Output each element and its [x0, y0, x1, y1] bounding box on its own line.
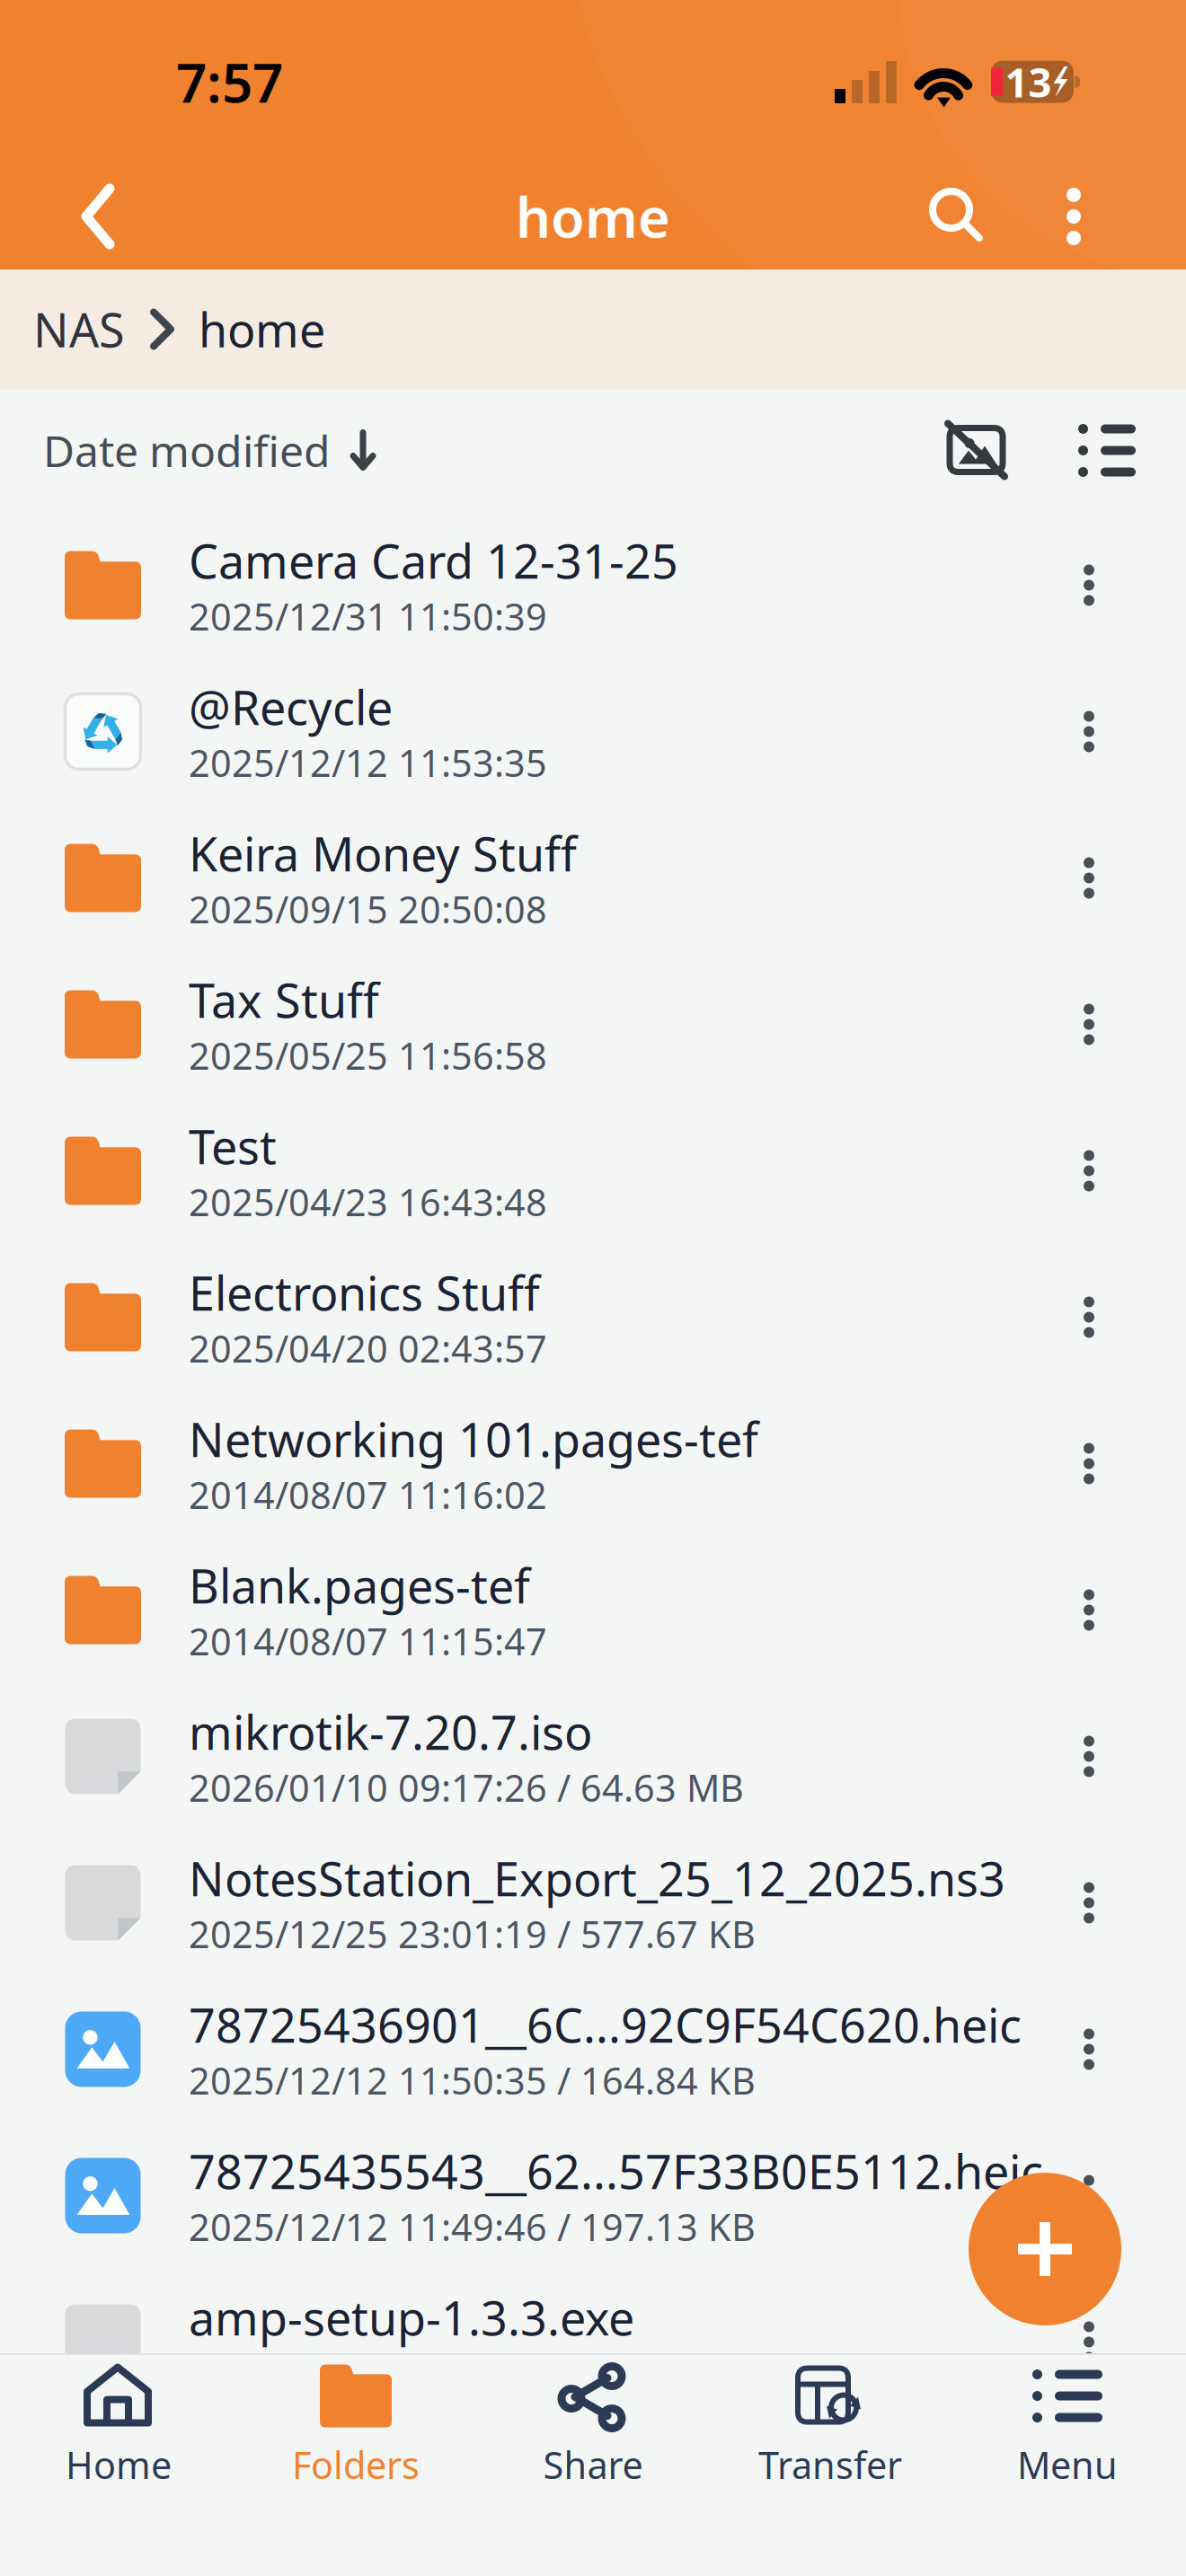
button[interactable]: Add — [969, 2173, 1121, 2325]
staticText: 7:57 — [176, 46, 283, 118]
button[interactable]: Electronics Stuff — [0, 1244, 1186, 1390]
staticText: home — [516, 180, 670, 253]
staticText: Networking 101.pages-tef — [189, 1408, 758, 1470]
staticText: 2025/12/12 11:53:35 — [189, 738, 547, 787]
staticText: Keira Money Stuff — [189, 822, 577, 884]
button[interactable]: Networking 101.pages-tef — [0, 1390, 1186, 1537]
staticText: 2025/12/25 23:01:19 / 577.67 KB — [189, 1909, 756, 1958]
button[interactable]: home — [199, 298, 325, 360]
staticText: 2025/04/20 02:43:57 — [189, 1324, 547, 1373]
staticText: home — [199, 298, 325, 360]
staticText: NAS — [33, 298, 125, 360]
button[interactable]: @Recycle — [0, 658, 1186, 805]
staticText: 2025/09/15 20:50:08 — [189, 884, 547, 934]
staticText: Date modified — [43, 422, 331, 479]
staticText: Camera Card 12-31-25 — [189, 529, 678, 592]
staticText: Blank.pages-tef — [189, 1554, 530, 1616]
button[interactable]: amp-setup-1.3.3.exe — [0, 2269, 1186, 2415]
staticText: 2026/01/10 09:17:26 / 64.63 MB — [189, 1763, 744, 1812]
button[interactable]: Date modified — [43, 422, 376, 479]
button[interactable]: Folders — [237, 2355, 474, 2497]
staticText: Folders — [292, 2440, 420, 2489]
staticText: 2025/12/31 11:50:39 — [189, 592, 547, 641]
staticText: 2025/12/12 11:49:46 / 197.13 KB — [189, 2202, 756, 2251]
button[interactable]: NotesStation_Export_25_12_2025.ns3 — [0, 1830, 1186, 1976]
button[interactable]: Tax Stuff — [0, 951, 1186, 1098]
staticText: Electronics Stuff — [189, 1262, 540, 1324]
button[interactable]: NAS — [33, 298, 125, 360]
staticText: 78725436901__6C...92C9F54C620.heic — [189, 1994, 1022, 2056]
staticText: 2014/08/07 11:15:47 — [189, 1616, 547, 1666]
staticText: 2025/04/23 16:43:48 — [189, 1177, 547, 1226]
staticText: 2025/12/12 11:50:35 / 164.84 KB — [189, 2056, 756, 2105]
staticText: 2014/08/07 11:16:02 — [189, 1470, 547, 1519]
button[interactable]: List view — [1069, 415, 1145, 485]
staticText: Test — [189, 1115, 277, 1177]
button[interactable]: Transfer — [712, 2355, 949, 2497]
staticText: mikrotik-7.20.7.iso — [189, 1701, 592, 1763]
staticText: Tax Stuff — [189, 969, 379, 1031]
button[interactable]: Back — [56, 160, 140, 273]
staticText: 2025/05/25 11:56:58 — [189, 1031, 547, 1080]
button[interactable]: Blank.pages-tef — [0, 1537, 1186, 1683]
staticText: @Recycle — [189, 676, 393, 738]
staticText: amp-setup-1.3.3.exe — [189, 2286, 634, 2348]
staticText: 2025/05/24 15:41:20 / 108.75 MB — [189, 2348, 766, 2398]
button[interactable]: More options — [1035, 160, 1112, 273]
staticText: Transfer — [758, 2440, 902, 2489]
staticText: NotesStation_Export_25_12_2025.ns3 — [189, 1847, 1005, 1909]
staticText: Menu — [1017, 2440, 1118, 2489]
button[interactable]: 78725435543__62...57F33B0E5112.heic — [0, 2122, 1186, 2269]
staticText: Share — [543, 2440, 643, 2489]
staticText: 78725435543__62...57F33B0E5112.heic — [189, 2140, 1043, 2202]
staticText: 13 — [1005, 55, 1052, 109]
button[interactable]: mikrotik-7.20.7.iso — [0, 1683, 1186, 1830]
button[interactable]: Keira Money Stuff — [0, 805, 1186, 951]
button[interactable]: 78725436901__6C...92C9F54C620.heic — [0, 1976, 1186, 2122]
button[interactable]: Test — [0, 1098, 1186, 1244]
button[interactable]: Share — [474, 2355, 712, 2497]
button[interactable]: Toggle thumbnails — [936, 412, 1017, 489]
staticText: Home — [66, 2440, 172, 2489]
button[interactable]: Menu — [949, 2355, 1186, 2497]
button[interactable]: Search — [904, 163, 1012, 270]
button[interactable]: Home — [0, 2355, 237, 2497]
button[interactable]: Camera Card 12-31-25 — [0, 512, 1186, 658]
